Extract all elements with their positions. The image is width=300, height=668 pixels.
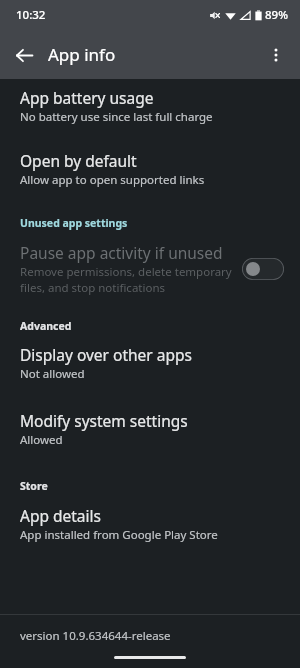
button[interactable]: App details bbox=[0, 505, 300, 549]
button[interactable]: App battery usage bbox=[0, 84, 300, 131]
staticText: Not allowed bbox=[20, 366, 85, 382]
staticText: App battery usage bbox=[20, 87, 154, 108]
staticText: No battery use since last full charge bbox=[20, 109, 213, 125]
button[interactable]: Pause app activity toggle bbox=[242, 258, 284, 280]
button[interactable]: Back bbox=[0, 31, 48, 79]
button[interactable]: Modify system settings bbox=[0, 410, 300, 454]
button[interactable]: Display over other apps bbox=[0, 344, 300, 388]
staticText: Advanced bbox=[20, 319, 72, 333]
staticText: App installed from Google Play Store bbox=[20, 527, 218, 543]
staticText: 89% bbox=[265, 7, 288, 23]
staticText: Allowed bbox=[20, 432, 63, 448]
staticText: 10:32 bbox=[16, 7, 46, 23]
staticText: App info bbox=[48, 43, 116, 66]
staticText: Open by default bbox=[20, 150, 137, 171]
staticText: Remove permissions, delete temporary fil… bbox=[20, 264, 232, 295]
button[interactable]: More options bbox=[252, 31, 300, 79]
staticText: Unused app settings bbox=[20, 216, 128, 230]
staticText: App details bbox=[20, 505, 101, 526]
button[interactable]: Open by default bbox=[0, 150, 300, 194]
staticText: Modify system settings bbox=[20, 410, 188, 431]
staticText: Store bbox=[20, 479, 48, 493]
button[interactable]: Pause app activity if unused bbox=[0, 240, 300, 299]
staticText: Pause app activity if unused bbox=[20, 242, 223, 263]
staticText: Display over other apps bbox=[20, 344, 192, 365]
staticText: Allow app to open supported links bbox=[20, 172, 205, 188]
staticText: version 10.9.634644-release bbox=[20, 628, 171, 644]
